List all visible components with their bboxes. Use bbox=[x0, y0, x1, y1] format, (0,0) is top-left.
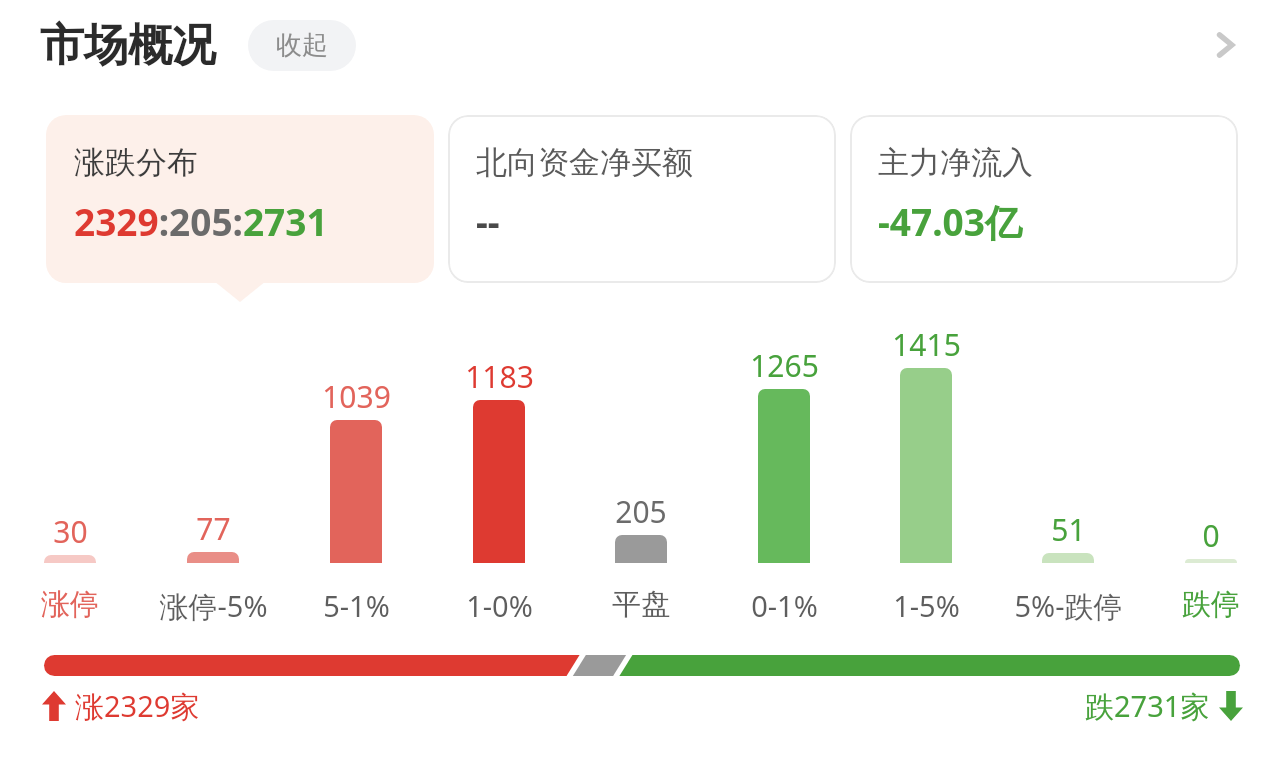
staticText: 跌2731家 bbox=[1085, 686, 1210, 726]
staticText: 涨跌分布 bbox=[74, 143, 198, 182]
staticText: 0 bbox=[1202, 515, 1220, 556]
button[interactable]: 1-0% bbox=[419, 586, 579, 625]
staticText: 涨2329家 bbox=[75, 686, 200, 726]
staticText: 51 bbox=[1051, 509, 1086, 550]
button[interactable]: 市场概况 bbox=[40, 18, 356, 73]
button[interactable]: 北向资金净买额 bbox=[448, 115, 836, 283]
staticText: 205 bbox=[615, 491, 667, 532]
button[interactable]: 涨停 bbox=[0, 586, 150, 623]
staticText: 收起 bbox=[276, 29, 328, 62]
button[interactable]: 5-1% bbox=[276, 586, 436, 625]
button[interactable]: 展开详情 bbox=[1197, 17, 1253, 73]
staticText: 1-5% bbox=[893, 586, 960, 625]
staticText: 跌停 bbox=[1182, 586, 1240, 623]
staticText: 0-1% bbox=[751, 586, 818, 625]
button[interactable]: 涨2329家 bbox=[42, 686, 200, 726]
button[interactable]: 跌2731家 bbox=[1085, 686, 1243, 726]
staticText: 1265 bbox=[750, 345, 819, 386]
button[interactable]: 收起 bbox=[248, 20, 356, 71]
button[interactable]: 0-1% bbox=[704, 586, 864, 625]
staticText: 2329:205:2731 bbox=[74, 196, 328, 246]
button[interactable]: 涨停-5% bbox=[133, 586, 293, 626]
button[interactable]: 5%-跌停 bbox=[988, 586, 1148, 626]
button[interactable]: 1-5% bbox=[846, 586, 1006, 625]
staticText: 涨停 bbox=[41, 586, 99, 623]
button[interactable]: 主力净流入 bbox=[850, 115, 1238, 283]
button[interactable]: 平盘 bbox=[561, 586, 721, 623]
staticText: 市场概况 bbox=[40, 18, 216, 73]
staticText: 涨停-5% bbox=[159, 586, 268, 626]
button[interactable]: 跌停 bbox=[1131, 586, 1271, 623]
staticText: 5-1% bbox=[323, 586, 390, 625]
staticText: 30 bbox=[53, 511, 88, 552]
staticText: 77 bbox=[196, 508, 231, 549]
staticText: -- bbox=[476, 196, 500, 246]
staticText: 1039 bbox=[322, 376, 391, 417]
staticText: 1183 bbox=[465, 356, 534, 397]
staticText: 1415 bbox=[892, 324, 961, 365]
staticText: 5%-跌停 bbox=[1014, 586, 1123, 626]
staticText: 主力净流入 bbox=[878, 143, 1033, 182]
button[interactable]: 涨跌分布 bbox=[46, 115, 434, 283]
staticText: 1-0% bbox=[466, 586, 533, 625]
staticText: -47.03亿 bbox=[878, 196, 1022, 247]
staticText: 平盘 bbox=[612, 586, 670, 623]
staticText: 北向资金净买额 bbox=[476, 143, 693, 182]
